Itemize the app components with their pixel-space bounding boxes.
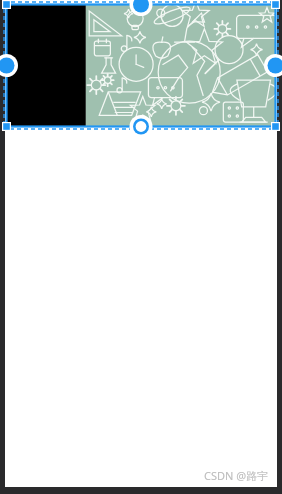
button[interactable]: Selected image: [5, 0, 277, 130]
staticText: CSDN @路宇: [204, 468, 269, 483]
